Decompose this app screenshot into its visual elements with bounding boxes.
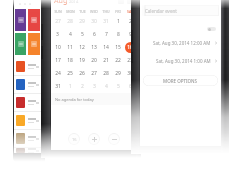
staticText: MORE OPTIONS [163,78,198,84]
staticText: 15 [115,44,121,51]
button[interactable]: 1 [64,80,76,93]
button[interactable]: More options [127,0,133,4]
button[interactable]: Calendar event [142,5,219,16]
button[interactable]: 30 [88,15,100,28]
staticText: 19 [79,57,85,64]
button[interactable]: 25 [64,67,76,80]
button[interactable]: 27 [51,15,64,28]
staticText: 3 [56,31,59,38]
staticText: 6 [129,83,132,90]
staticText: 17 [55,57,61,64]
button[interactable]: Zoom in [88,133,100,145]
button[interactable]: App tile [28,33,40,55]
button[interactable]: 16 [68,133,80,145]
staticText: 18 [67,57,73,64]
staticText: TUE [79,9,86,14]
staticText: 16 [127,44,133,51]
button[interactable]: 4 [64,28,76,41]
button[interactable] [14,58,41,75]
staticText: 22 [115,57,121,64]
button[interactable] [14,148,41,153]
button[interactable]: Sat, Aug 30, 2014 12:00 AM [140,38,221,47]
staticText: 28 [67,18,73,25]
button[interactable]: 29 [112,67,124,80]
staticText: 27 [55,18,61,25]
staticText: Aug [54,0,68,6]
staticText: 23 [127,57,133,64]
button[interactable]: 28 [64,15,76,28]
staticText: 12 [79,44,85,51]
staticText: 29 [79,18,85,25]
button[interactable]: 2 [124,15,136,28]
staticText: 24 [55,70,61,77]
staticText: 1 [117,18,120,25]
button[interactable]: 14 [100,41,112,54]
staticText: No agenda for today [55,97,94,102]
staticText: 11 [67,44,73,51]
button[interactable]: App tile [15,9,26,31]
button[interactable]: 18 [64,54,76,67]
button[interactable]: App tile [28,9,40,31]
button[interactable]: 2 [76,80,88,93]
button[interactable] [14,94,41,111]
button[interactable] [14,112,41,129]
button[interactable]: 13 [88,41,100,54]
staticText: 30 [91,18,97,25]
button[interactable]: MORE OPTIONS [143,75,218,86]
button[interactable]: 3 [51,28,64,41]
staticText: FRI [115,9,121,14]
staticText: 4 [69,31,72,38]
button[interactable]: 24 [51,67,64,80]
staticText: 6 [93,31,96,38]
button[interactable]: Zoom out [108,133,120,145]
button[interactable]: Sat, Aug 30, 2014 1:00 AM [140,56,221,65]
staticText: Sat, Aug 30, 2014 12:00 AM [153,40,211,46]
button[interactable] [14,130,41,147]
button[interactable]: App tile [15,33,26,55]
button[interactable]: 21 [100,54,112,67]
button[interactable]: 29 [76,15,88,28]
button[interactable]: 12 [76,41,88,54]
button[interactable]: 5 [112,80,124,93]
staticText: 26 [79,70,85,77]
button[interactable]: 26 [76,67,88,80]
staticText: 2014 [68,0,79,4]
button[interactable] [14,76,41,93]
staticText: 7 [105,31,108,38]
button[interactable]: 31 [51,80,64,93]
button[interactable]: 19 [76,54,88,67]
staticText: WED [90,9,98,14]
button[interactable]: 7 [100,28,112,41]
button[interactable]: 8 [112,28,124,41]
button[interactable]: 11 [64,41,76,54]
button[interactable]: 15 [112,41,124,54]
staticText: MON [66,9,75,14]
staticText: 8 [117,31,120,38]
button[interactable]: 5 [76,28,88,41]
button[interactable]: 17 [51,54,64,67]
staticText: 2 [81,83,84,90]
staticText: 5 [117,83,120,90]
staticText: 5 [81,31,84,38]
button[interactable]: 23 [124,54,136,67]
button[interactable]: 30 [124,67,136,80]
button[interactable]: 4 [100,80,112,93]
staticText: 29 [115,70,121,77]
button[interactable]: 22 [112,54,124,67]
staticText: 30 [127,70,133,77]
button[interactable]: 31 [100,15,112,28]
button[interactable]: 28 [100,67,112,80]
button[interactable]: 27 [88,67,100,80]
button[interactable]: 6 [88,28,100,41]
staticText: THU [102,9,110,14]
button[interactable]: 20 [88,54,100,67]
button[interactable]: 6 [124,80,136,93]
button[interactable] [140,24,221,33]
staticText: 1 [69,83,72,90]
button[interactable]: 16 [124,41,136,54]
button[interactable]: 3 [88,80,100,93]
button[interactable]: 9 [124,28,136,41]
button[interactable]: 1 [112,15,124,28]
button[interactable]: 10 [51,41,64,54]
